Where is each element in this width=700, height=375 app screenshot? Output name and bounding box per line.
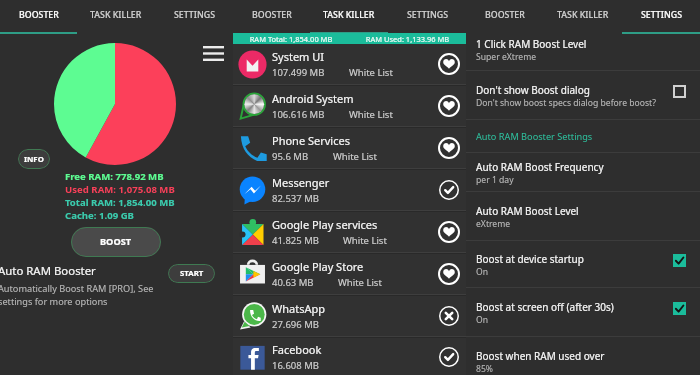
button[interactable]: Messenger <box>233 170 466 210</box>
staticText: Auto RAM Booster <box>0 263 96 279</box>
staticText: TASK KILLER <box>557 9 609 21</box>
staticText: 107.499 MB <box>272 66 325 79</box>
staticText: SETTINGS <box>174 9 215 21</box>
staticText: White List <box>338 276 382 289</box>
staticText: 27.696 MB <box>272 318 319 331</box>
staticText: BOOSTER <box>485 9 525 21</box>
button[interactable]: Auto RAM Boost Level <box>476 204 686 240</box>
staticText: White List <box>349 108 393 121</box>
staticText: Auto RAM Booster Settings <box>476 130 593 143</box>
staticText: Boost at screen off (after 30s) <box>476 300 614 314</box>
staticText: Boost when RAM used over <box>476 349 605 363</box>
staticText: System UI <box>272 49 325 64</box>
staticText: BOOSTER <box>19 9 59 21</box>
staticText: Google Play Store <box>272 259 364 274</box>
staticText: WhatsApp <box>272 301 325 316</box>
staticText: 95.6 MB <box>272 150 309 163</box>
staticText: Google Play services <box>272 217 378 232</box>
staticText: Don't show Boost dialog <box>476 83 590 97</box>
button[interactable]: Action <box>435 92 463 120</box>
staticText: 82.537 MB <box>272 192 319 205</box>
button[interactable]: Android System <box>233 86 466 126</box>
button[interactable]: Auto RAM Boost Frequency <box>476 160 686 191</box>
staticText: 85% <box>476 363 493 375</box>
staticText: Auto RAM Boost Frequency <box>476 160 604 174</box>
staticText: 16.608 MB <box>272 359 319 372</box>
staticText: TASK KILLER <box>90 9 142 21</box>
staticText: TASK KILLER <box>323 9 375 21</box>
button[interactable]: WhatsApp <box>233 296 466 336</box>
button[interactable]: Menu <box>201 44 225 62</box>
staticText: 40.63 MB <box>272 276 314 289</box>
staticText: Free RAM: 778.92 MB <box>65 170 164 183</box>
staticText: per 1 day <box>476 174 514 186</box>
staticText: BOOST <box>100 235 132 248</box>
staticText: 41.825 MB <box>272 234 319 247</box>
staticText: SETTINGS <box>641 9 682 21</box>
staticText: Don't show boost specs dialog before boo… <box>476 97 656 109</box>
staticText: Phone Services <box>272 133 350 148</box>
button[interactable]: Action <box>435 218 463 246</box>
staticText: Total RAM: 1,854.00 MB <box>65 196 175 209</box>
staticText: Messenger <box>272 175 330 190</box>
staticText: White List <box>343 234 387 247</box>
button[interactable]: Action <box>435 343 463 371</box>
staticText: SETTINGS <box>407 9 448 21</box>
button[interactable]: BOOSTER <box>466 0 544 31</box>
staticText: On <box>476 314 489 326</box>
button[interactable]: BOOST <box>71 227 161 257</box>
staticText: 106.616 MB <box>272 108 325 121</box>
button[interactable]: System UI <box>233 44 466 84</box>
button[interactable]: Boost when RAM used over <box>476 349 686 375</box>
button[interactable]: INFO <box>18 149 50 169</box>
staticText: White List <box>349 66 393 79</box>
button[interactable]: SETTINGS <box>388 0 466 31</box>
button[interactable]: 1 Click RAM Boost Level <box>476 37 686 70</box>
button[interactable]: Facebook <box>233 338 466 375</box>
button[interactable]: TASK KILLER <box>77 0 155 31</box>
button[interactable]: Boost at device startup <box>476 252 686 287</box>
staticText: Used RAM: 1,075.08 MB <box>65 183 175 196</box>
button[interactable]: Google Play Store <box>233 254 466 294</box>
button[interactable]: Action <box>435 134 463 162</box>
staticText: RAM Used: 1,133.96 MB <box>349 34 466 44</box>
button[interactable]: Action <box>435 50 463 78</box>
button[interactable]: SETTINGS <box>622 0 700 31</box>
staticText: BOOSTER <box>252 9 292 21</box>
staticText: Facebook <box>272 342 322 357</box>
button[interactable]: START <box>168 264 215 283</box>
button[interactable]: Action <box>435 260 463 288</box>
button[interactable]: BOOSTER <box>0 0 77 31</box>
staticText: Android System <box>272 91 354 106</box>
button[interactable]: Google Play services <box>233 212 466 252</box>
staticText: INFO <box>24 154 44 165</box>
button[interactable]: Action <box>435 176 463 204</box>
button[interactable]: Phone Services <box>233 128 466 168</box>
button[interactable]: Don't show Boost dialog <box>476 83 686 119</box>
staticText: Super eXtreme <box>476 51 537 63</box>
staticText: Auto RAM Boost Level <box>476 204 579 218</box>
staticText: 1 Click RAM Boost Level <box>476 37 587 51</box>
staticText: eXtreme <box>476 218 511 230</box>
button[interactable]: TASK KILLER <box>544 0 622 31</box>
staticText: RAM Total: 1,854.00 MB <box>233 34 349 44</box>
staticText: On <box>476 266 489 278</box>
button[interactable]: Action <box>435 302 463 330</box>
staticText: Boost at device startup <box>476 252 584 266</box>
staticText: START <box>180 268 204 279</box>
button[interactable]: TASK KILLER <box>310 0 388 31</box>
button[interactable]: BOOSTER <box>233 0 310 31</box>
button[interactable]: SETTINGS <box>155 0 233 31</box>
button[interactable]: Boost at screen off (after 30s) <box>476 300 686 336</box>
staticText: Automatically Boost RAM [PRO], See setti… <box>0 282 154 308</box>
staticText: Cache: 1.09 GB <box>65 209 134 222</box>
staticText: White List <box>333 150 377 163</box>
